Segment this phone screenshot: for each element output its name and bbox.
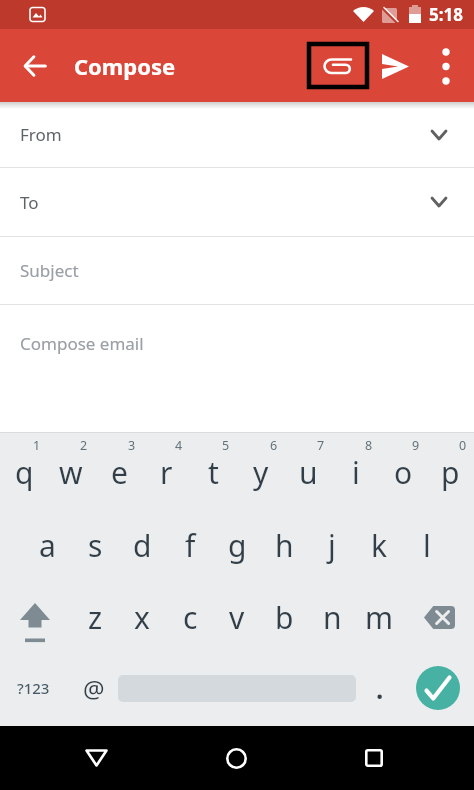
staticText: i	[352, 452, 360, 493]
button[interactable]: e	[96, 439, 142, 505]
button[interactable]: g	[214, 512, 260, 578]
staticText: r	[160, 452, 173, 493]
staticText: n	[323, 597, 342, 638]
button[interactable]: v	[214, 584, 260, 650]
staticText: k	[371, 525, 388, 566]
staticText: 2	[80, 437, 88, 454]
button[interactable]	[423, 44, 469, 88]
staticText: .	[376, 671, 384, 706]
staticText: l	[423, 525, 431, 566]
staticText: 5:18	[429, 3, 463, 26]
staticText: @	[83, 672, 105, 705]
button[interactable]	[416, 666, 460, 710]
staticText: a	[39, 525, 56, 566]
button[interactable]: m	[356, 584, 402, 650]
button[interactable]: p	[427, 439, 473, 505]
button[interactable]: Compose email	[0, 305, 474, 381]
staticText: 7	[317, 437, 325, 454]
staticText: j	[328, 525, 336, 566]
button[interactable]	[307, 42, 369, 89]
staticText: f	[185, 525, 196, 566]
staticText: b	[275, 597, 294, 638]
button[interactable]: n	[309, 584, 355, 650]
staticText: p	[441, 452, 460, 493]
button[interactable]: r	[143, 439, 189, 505]
button[interactable]: .	[362, 660, 398, 716]
button[interactable]: o	[380, 439, 426, 505]
staticText: Compose email	[20, 332, 144, 355]
button[interactable]: ?123	[8, 660, 58, 716]
button[interactable]: z	[72, 584, 118, 650]
staticText: t	[208, 452, 219, 493]
staticText: 4	[175, 437, 183, 454]
staticText: To	[20, 191, 39, 214]
staticText: 6	[270, 437, 278, 454]
staticText: 5	[222, 437, 230, 454]
button[interactable]: From	[0, 102, 474, 167]
staticText: z	[88, 597, 103, 638]
staticText: d	[133, 525, 152, 566]
button[interactable]: f	[167, 512, 213, 578]
button[interactable]: c	[167, 584, 213, 650]
button[interactable]: h	[261, 512, 307, 578]
button[interactable]: x	[119, 584, 165, 650]
button[interactable]: d	[119, 512, 165, 578]
button[interactable]: k	[356, 512, 402, 578]
staticText: 0	[459, 437, 467, 454]
staticText: e	[111, 452, 128, 493]
button[interactable]	[204, 726, 268, 790]
button[interactable]: j	[309, 512, 355, 578]
button[interactable]: u	[285, 439, 331, 505]
staticText: 9	[412, 437, 420, 454]
button[interactable]	[8, 585, 62, 649]
staticText: 1	[33, 437, 41, 454]
button[interactable]: a	[24, 512, 70, 578]
staticText: c	[183, 597, 198, 638]
staticText: Compose	[74, 51, 176, 81]
button[interactable]: Subject	[0, 237, 474, 304]
button[interactable]	[342, 726, 406, 790]
button[interactable]	[64, 726, 128, 790]
staticText: From	[20, 123, 62, 146]
staticText: v	[229, 597, 245, 638]
button[interactable]: i	[333, 439, 379, 505]
button[interactable]: y	[238, 439, 284, 505]
staticText: s	[88, 525, 103, 566]
button[interactable]: w	[48, 439, 94, 505]
staticText: 3	[128, 437, 136, 454]
staticText: o	[394, 452, 413, 493]
staticText: h	[275, 525, 294, 566]
button[interactable]: s	[72, 512, 118, 578]
button[interactable]: To	[0, 168, 474, 236]
button[interactable]: q	[1, 439, 47, 505]
button[interactable]	[13, 44, 57, 88]
staticText: m	[365, 597, 394, 638]
staticText: 8	[365, 437, 373, 454]
staticText: g	[228, 525, 247, 566]
staticText: x	[134, 597, 150, 638]
button[interactable]	[414, 589, 464, 645]
staticText: q	[15, 452, 34, 493]
button[interactable]: b	[261, 584, 307, 650]
staticText: Subject	[20, 259, 79, 282]
button[interactable]: l	[404, 512, 450, 578]
staticText: u	[299, 452, 318, 493]
button[interactable]: t	[190, 439, 236, 505]
staticText: ?123	[17, 678, 50, 698]
button[interactable]: @	[70, 660, 118, 716]
staticText: w	[59, 452, 83, 493]
button[interactable]	[373, 44, 417, 88]
staticText: y	[253, 452, 269, 493]
